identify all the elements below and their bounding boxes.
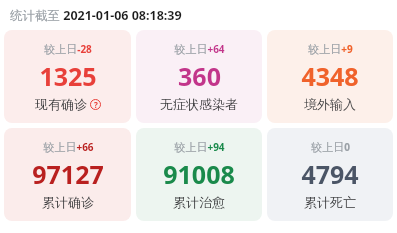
staticText: 累计治愈 [173,194,225,210]
staticText: 91008 [163,157,235,191]
staticText: 较上日-28 [44,42,92,56]
button[interactable]: 较上日0 [267,128,393,221]
staticText: 现有确诊 [35,96,87,112]
staticText: 较上日+94 [174,140,225,154]
staticText: 累计死亡 [304,194,356,210]
staticText: 较上日+9 [308,42,353,56]
staticText: 累计确诊 [42,194,94,210]
button[interactable]: 帮助说明 [90,99,101,110]
staticText: 1325 [39,59,97,93]
button[interactable]: 较上日-28 [4,30,131,123]
staticText: 较上日+64 [174,42,225,56]
button[interactable]: 较上日+64 [136,30,262,123]
staticText: 无症状感染者 [160,96,238,112]
staticText: 境外输入 [304,96,356,112]
button[interactable]: 较上日+94 [136,128,262,221]
staticText: 较上日0 [311,140,350,154]
button[interactable]: 较上日+66 [4,128,131,221]
staticText: 4348 [301,59,359,93]
staticText: ? [94,99,98,110]
staticText: 360 [178,59,221,93]
button[interactable]: 较上日+9 [267,30,393,123]
staticText: 较上日+66 [43,140,94,154]
staticText: 统计截至 2021-01-06 08:18:39 [10,7,182,24]
staticText: 97127 [32,157,104,191]
staticText: 4794 [301,157,359,191]
